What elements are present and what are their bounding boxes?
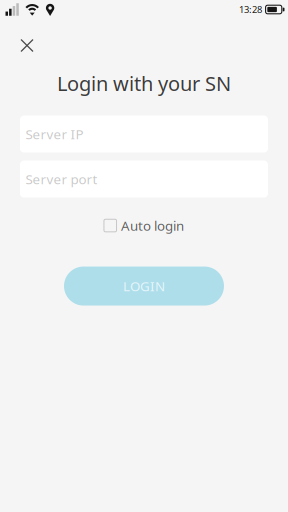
button[interactable]: Auto login <box>104 219 184 233</box>
button[interactable]: Close <box>8 27 46 63</box>
staticText: Login with your SN <box>57 70 231 97</box>
button[interactable]: LOGIN <box>64 267 224 306</box>
button[interactable]: Server IP <box>20 116 268 153</box>
staticText: LOGIN <box>123 277 165 295</box>
staticText: Server port <box>25 170 97 188</box>
button[interactable]: Server port <box>20 161 268 198</box>
staticText: Auto login <box>121 217 184 234</box>
staticText: 13:28 <box>239 3 262 16</box>
staticText: Server IP <box>25 125 83 143</box>
